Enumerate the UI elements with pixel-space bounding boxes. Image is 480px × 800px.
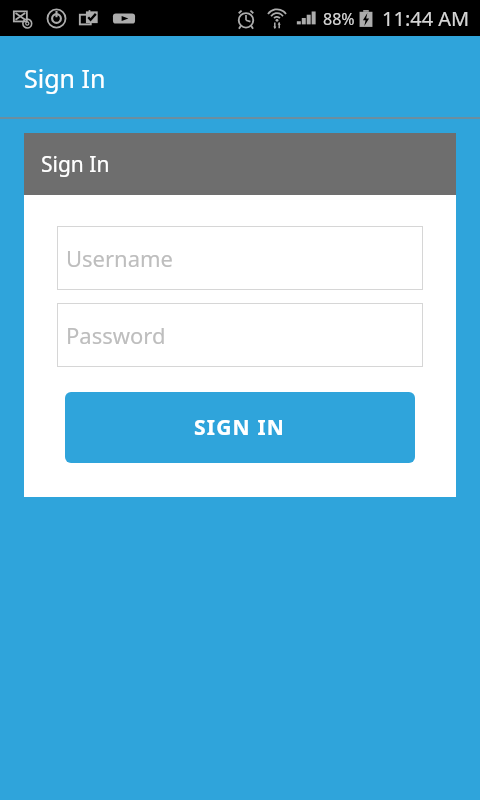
staticText: SIGN IN: [194, 413, 286, 442]
staticText: 88%: [323, 8, 355, 30]
button[interactable]: Password: [57, 303, 423, 367]
staticText: 11:44 AM: [382, 5, 470, 32]
staticText: Username: [66, 243, 174, 273]
staticText: Sign In: [41, 150, 110, 179]
staticText: Sign In: [24, 61, 106, 95]
button[interactable]: Username: [57, 226, 423, 290]
staticText: Password: [66, 320, 166, 350]
button[interactable]: SIGN IN: [65, 392, 415, 463]
